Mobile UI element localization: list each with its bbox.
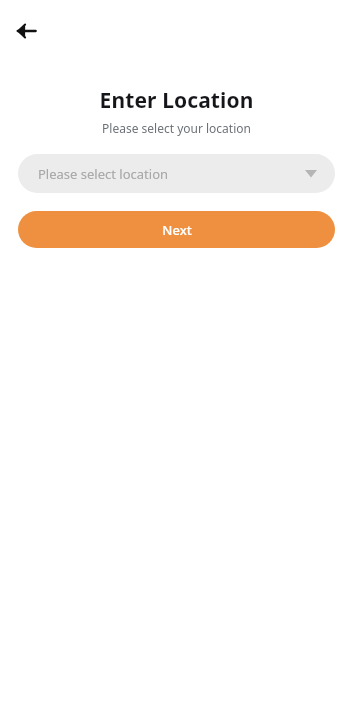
staticText: Enter Location xyxy=(0,86,353,115)
staticText: Please select your location xyxy=(0,120,353,136)
staticText: Next xyxy=(162,221,192,239)
button[interactable]: Next xyxy=(18,211,335,248)
button[interactable]: Please select location xyxy=(18,154,335,193)
button[interactable]: Back xyxy=(10,15,42,47)
staticText: Please select location xyxy=(38,165,169,183)
